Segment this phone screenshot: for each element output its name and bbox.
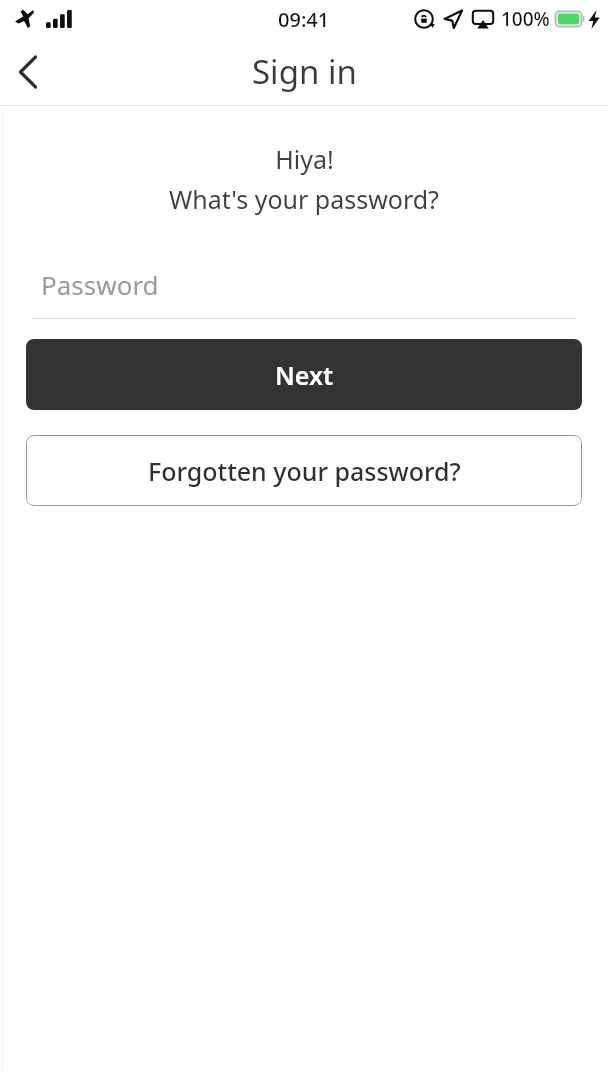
button[interactable]: Back xyxy=(0,44,56,100)
staticText: 09:41 xyxy=(278,6,330,33)
staticText: Password xyxy=(41,267,159,302)
staticText: Sign in xyxy=(252,49,357,94)
staticText: Forgotten your password? xyxy=(148,454,461,488)
staticText: What's your password? xyxy=(169,182,439,216)
button[interactable]: Password xyxy=(33,261,575,319)
staticText: 100% xyxy=(501,6,550,32)
staticText: Next xyxy=(275,358,334,392)
button[interactable]: Forgotten your password? xyxy=(26,435,582,506)
staticText: Hiya! xyxy=(275,142,334,176)
button[interactable]: Next xyxy=(26,339,582,410)
